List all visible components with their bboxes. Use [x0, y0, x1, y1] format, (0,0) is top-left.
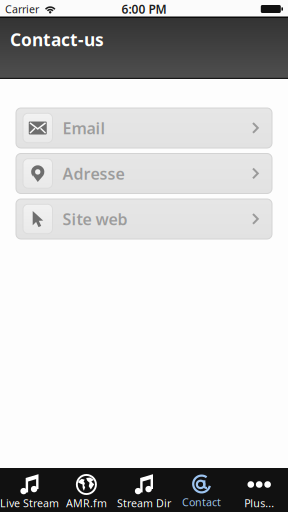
staticText: Email [62, 117, 105, 139]
staticText: Live Stream [0, 496, 59, 510]
button[interactable]: Plus... [230, 468, 288, 512]
staticText: Plus... [244, 496, 274, 510]
staticText: AMR.fm [66, 496, 107, 510]
staticText: Site web [62, 208, 127, 230]
staticText: Contact [182, 495, 221, 509]
button[interactable]: Adresse [16, 153, 272, 193]
button[interactable]: Email [16, 108, 272, 148]
button[interactable]: AMR.fm [58, 468, 115, 512]
button[interactable]: Live Stream [0, 468, 58, 512]
staticText: Carrier [5, 2, 39, 16]
button[interactable]: Contact [173, 468, 230, 512]
staticText: Adresse [62, 163, 124, 184]
staticText: Stream Dir [117, 496, 171, 510]
staticText: 6:00 PM [121, 1, 166, 17]
staticText: Contact-us [10, 28, 104, 51]
button[interactable]: Stream Dir [115, 468, 173, 512]
button[interactable]: Site web [16, 199, 272, 239]
